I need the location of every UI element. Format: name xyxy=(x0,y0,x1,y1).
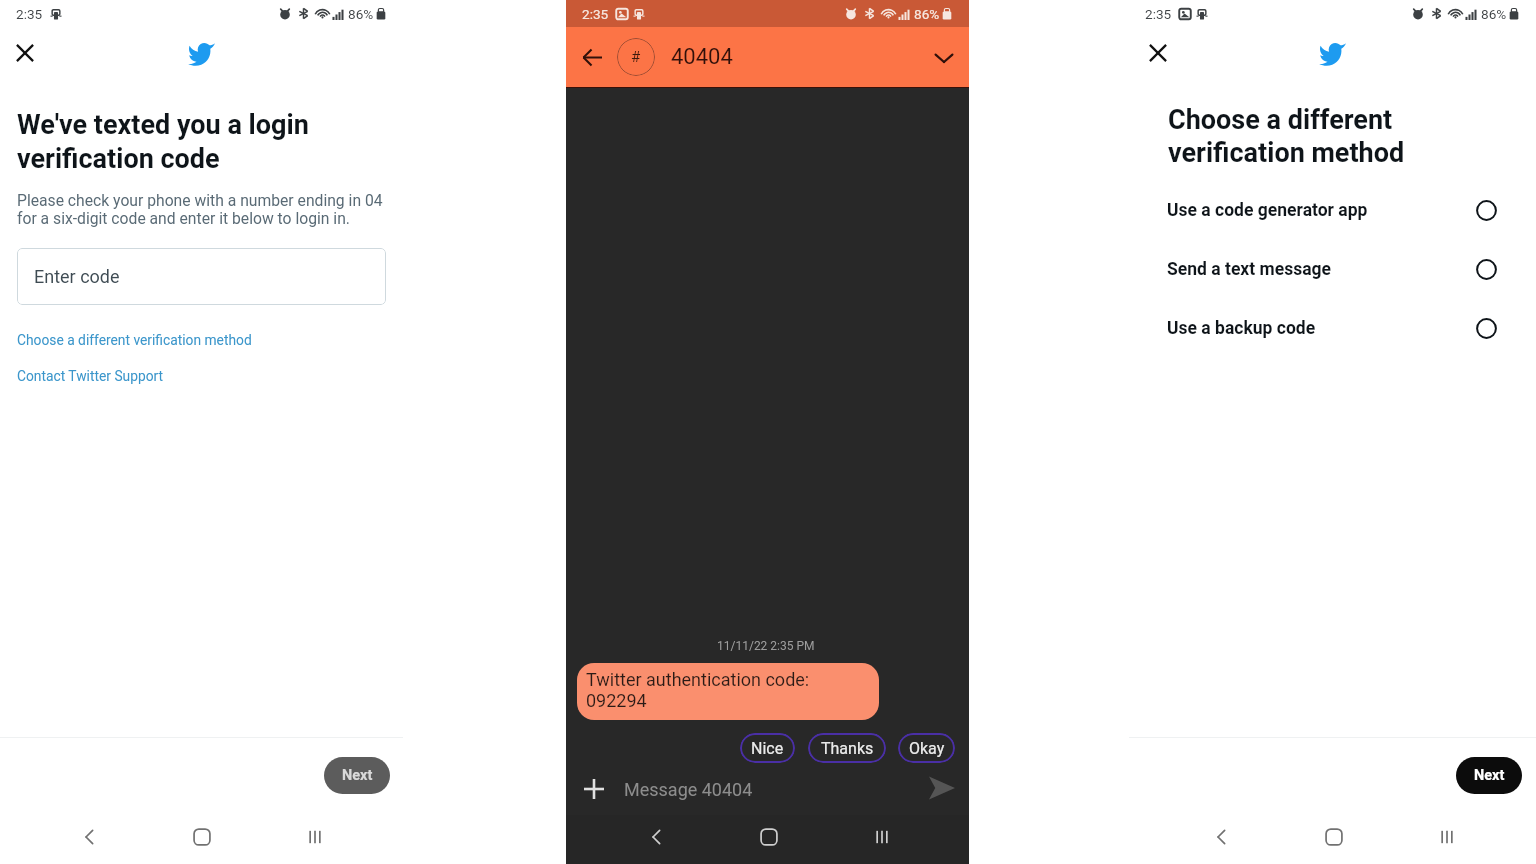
staticText: Next xyxy=(342,767,373,784)
staticText: Thanks xyxy=(821,739,874,758)
staticText: 2:35 xyxy=(1145,6,1172,22)
button[interactable]: Next xyxy=(324,757,390,794)
staticText: Choose a different verification method xyxy=(1168,104,1405,169)
staticText: Next xyxy=(1474,767,1505,784)
staticText: Use a code generator app xyxy=(1167,200,1368,221)
button[interactable]: Add attachment xyxy=(584,779,604,799)
button[interactable]: Close xyxy=(1149,44,1167,62)
button[interactable]: Send a text message xyxy=(1167,257,1497,281)
staticText: 2:35 xyxy=(16,6,43,22)
button[interactable]: Close xyxy=(16,44,34,62)
button[interactable]: Contact avatar xyxy=(617,38,655,76)
button[interactable]: Home xyxy=(1323,826,1345,848)
button[interactable]: Use a backup code xyxy=(1167,316,1497,340)
staticText: 86% xyxy=(1481,6,1507,22)
staticText: Twitter authentication code: 092294 xyxy=(586,669,810,711)
staticText: We've texted you a login verification co… xyxy=(17,109,309,175)
staticText: Okay xyxy=(909,739,945,758)
staticText: Nice xyxy=(751,739,784,758)
staticText: 2:35 xyxy=(582,6,609,22)
staticText: Send a text message xyxy=(1167,259,1332,280)
button[interactable]: Back xyxy=(79,826,101,848)
button[interactable]: 40404 xyxy=(666,34,746,78)
staticText: # xyxy=(631,48,641,66)
staticText: Use a backup code xyxy=(1167,318,1316,339)
button[interactable]: Okay xyxy=(898,733,955,763)
staticText: Contact Twitter Support xyxy=(17,368,164,384)
staticText: 11/11/22 2:35 PM xyxy=(717,639,815,653)
button[interactable]: Next xyxy=(1456,757,1522,794)
staticText: 86% xyxy=(348,6,374,22)
button[interactable]: Back xyxy=(583,48,602,67)
button[interactable]: Nice xyxy=(740,733,795,763)
button[interactable]: Contact Twitter Support xyxy=(17,362,165,388)
button[interactable]: Show details xyxy=(934,48,954,68)
button[interactable]: Back xyxy=(1211,826,1233,848)
button[interactable]: Home xyxy=(758,826,780,848)
staticText: Please check your phone with a number en… xyxy=(17,191,383,228)
button[interactable]: Message 40404 xyxy=(614,770,914,808)
button[interactable]: Twitter authentication code: 092294 xyxy=(577,663,879,720)
button[interactable]: Enter code xyxy=(17,248,386,305)
staticText: Choose a different verification method xyxy=(17,332,252,348)
button[interactable]: Choose a different verification method xyxy=(17,326,253,352)
button[interactable]: Back xyxy=(646,826,668,848)
button[interactable]: Home xyxy=(191,826,213,848)
button[interactable]: Recent apps xyxy=(871,826,893,848)
button[interactable]: Use a code generator app xyxy=(1167,198,1497,222)
staticText: 40404 xyxy=(671,44,733,70)
staticText: 86% xyxy=(914,6,940,22)
staticText: Message 40404 xyxy=(624,779,753,800)
button[interactable]: Recent apps xyxy=(304,826,326,848)
staticText: Enter code xyxy=(34,266,120,287)
button[interactable]: Thanks xyxy=(808,733,886,763)
button[interactable]: Recent apps xyxy=(1436,826,1458,848)
button[interactable]: Send xyxy=(929,776,955,800)
